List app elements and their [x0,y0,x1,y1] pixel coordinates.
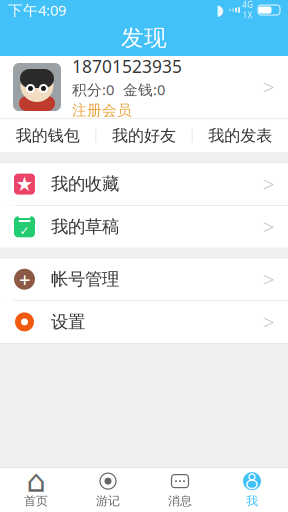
staticText: 消息 [168,494,192,508]
staticText: 游记 [96,494,120,508]
button[interactable]: 消息 [144,468,216,512]
staticText: 我 [246,494,258,508]
button[interactable]: 我的发表 [192,119,288,153]
staticText: 金钱:0 [123,80,165,99]
staticText: 我的收藏 [51,173,119,195]
staticText: > [263,213,274,240]
button[interactable]: 我的钱包 [0,119,95,153]
staticText: 4G [242,0,253,10]
staticText: > [263,266,274,292]
button[interactable]: + [0,258,288,300]
button[interactable]: 18701523935 [0,56,288,118]
button[interactable]: 我的好友 [96,119,192,153]
staticText: ✓ [19,224,29,238]
button[interactable]: 我 [216,468,288,512]
staticText: > [263,171,274,197]
staticText: 设置 [51,311,85,333]
staticText: ★ [15,173,33,195]
staticText: 首页 [24,494,48,508]
staticText: ◗ [216,2,224,18]
button[interactable]: ✓ [0,206,288,248]
staticText: 我的好友 [112,126,176,146]
button[interactable]: ★ [0,163,288,205]
staticText: 帐号管理 [51,269,119,290]
staticText: 发现 [121,24,167,52]
staticText: > [263,309,274,335]
staticText: 注册会员 [72,101,132,119]
staticText: + [19,266,30,292]
staticText: > [263,74,274,100]
staticText: 我的钱包 [16,126,80,146]
staticText: ⌂ [26,464,45,498]
staticText: 1X [242,10,252,21]
staticText: 积分:0 [72,80,114,99]
staticText: 18701523935 [72,55,182,78]
button[interactable]: 设置 [0,301,288,343]
staticText: 我的发表 [208,126,272,146]
button[interactable]: ⌂ [0,468,72,512]
button[interactable]: 游记 [72,468,144,512]
staticText: 下午4:09 [8,0,66,20]
staticText: 我的草稿 [51,216,119,237]
